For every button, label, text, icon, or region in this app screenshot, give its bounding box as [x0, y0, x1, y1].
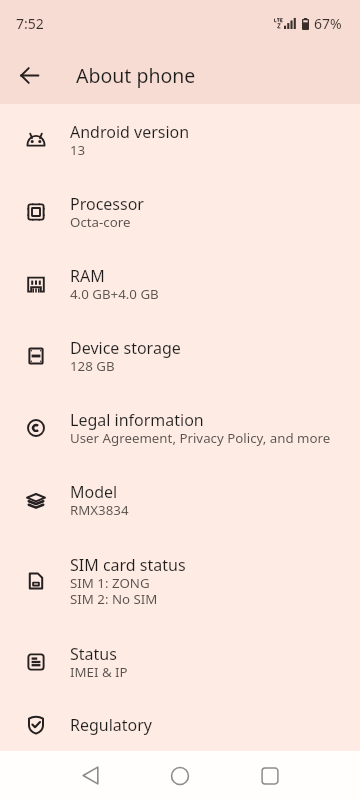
button[interactable]: Regulatory: [0, 698, 360, 751]
staticText: Status: [70, 643, 117, 665]
button[interactable]: Back: [8, 54, 50, 96]
staticText: 67%: [314, 14, 342, 33]
button[interactable]: Status: [0, 626, 360, 698]
staticText: Octa-core: [70, 213, 131, 231]
staticText: User Agreement, Privacy Policy, and more: [70, 429, 331, 447]
button[interactable]: Processor: [0, 176, 360, 248]
staticText: 7:52: [16, 14, 44, 33]
button[interactable]: SIM card status: [0, 536, 360, 626]
button[interactable]: RAM: [0, 248, 360, 320]
staticText: Android version: [70, 121, 190, 143]
button[interactable]: Legal information: [0, 392, 360, 464]
staticText: RMX3834: [70, 501, 129, 519]
staticText: Legal information: [70, 409, 204, 431]
staticText: 13: [70, 141, 86, 159]
staticText: 4.0 GB+4.0 GB: [70, 285, 159, 303]
button[interactable]: Home: [150, 751, 210, 800]
staticText: RAM: [70, 265, 105, 287]
button[interactable]: Android version: [0, 104, 360, 176]
staticText: Processor: [70, 193, 144, 215]
staticText: Regulatory: [70, 714, 153, 736]
staticText: Device storage: [70, 337, 181, 359]
staticText: SIM 1: ZONG: [70, 574, 150, 592]
staticText: SIM 2: No SIM: [70, 590, 158, 608]
staticText: 128 GB: [70, 357, 115, 375]
button[interactable]: Device storage: [0, 320, 360, 392]
staticText: Model: [70, 481, 118, 503]
staticText: SIM card status: [70, 554, 186, 576]
staticText: About phone: [76, 62, 196, 89]
button[interactable]: Recents: [240, 751, 300, 800]
button[interactable]: Model: [0, 464, 360, 536]
staticText: IMEI & IP: [70, 663, 128, 681]
button[interactable]: Back: [60, 751, 120, 800]
